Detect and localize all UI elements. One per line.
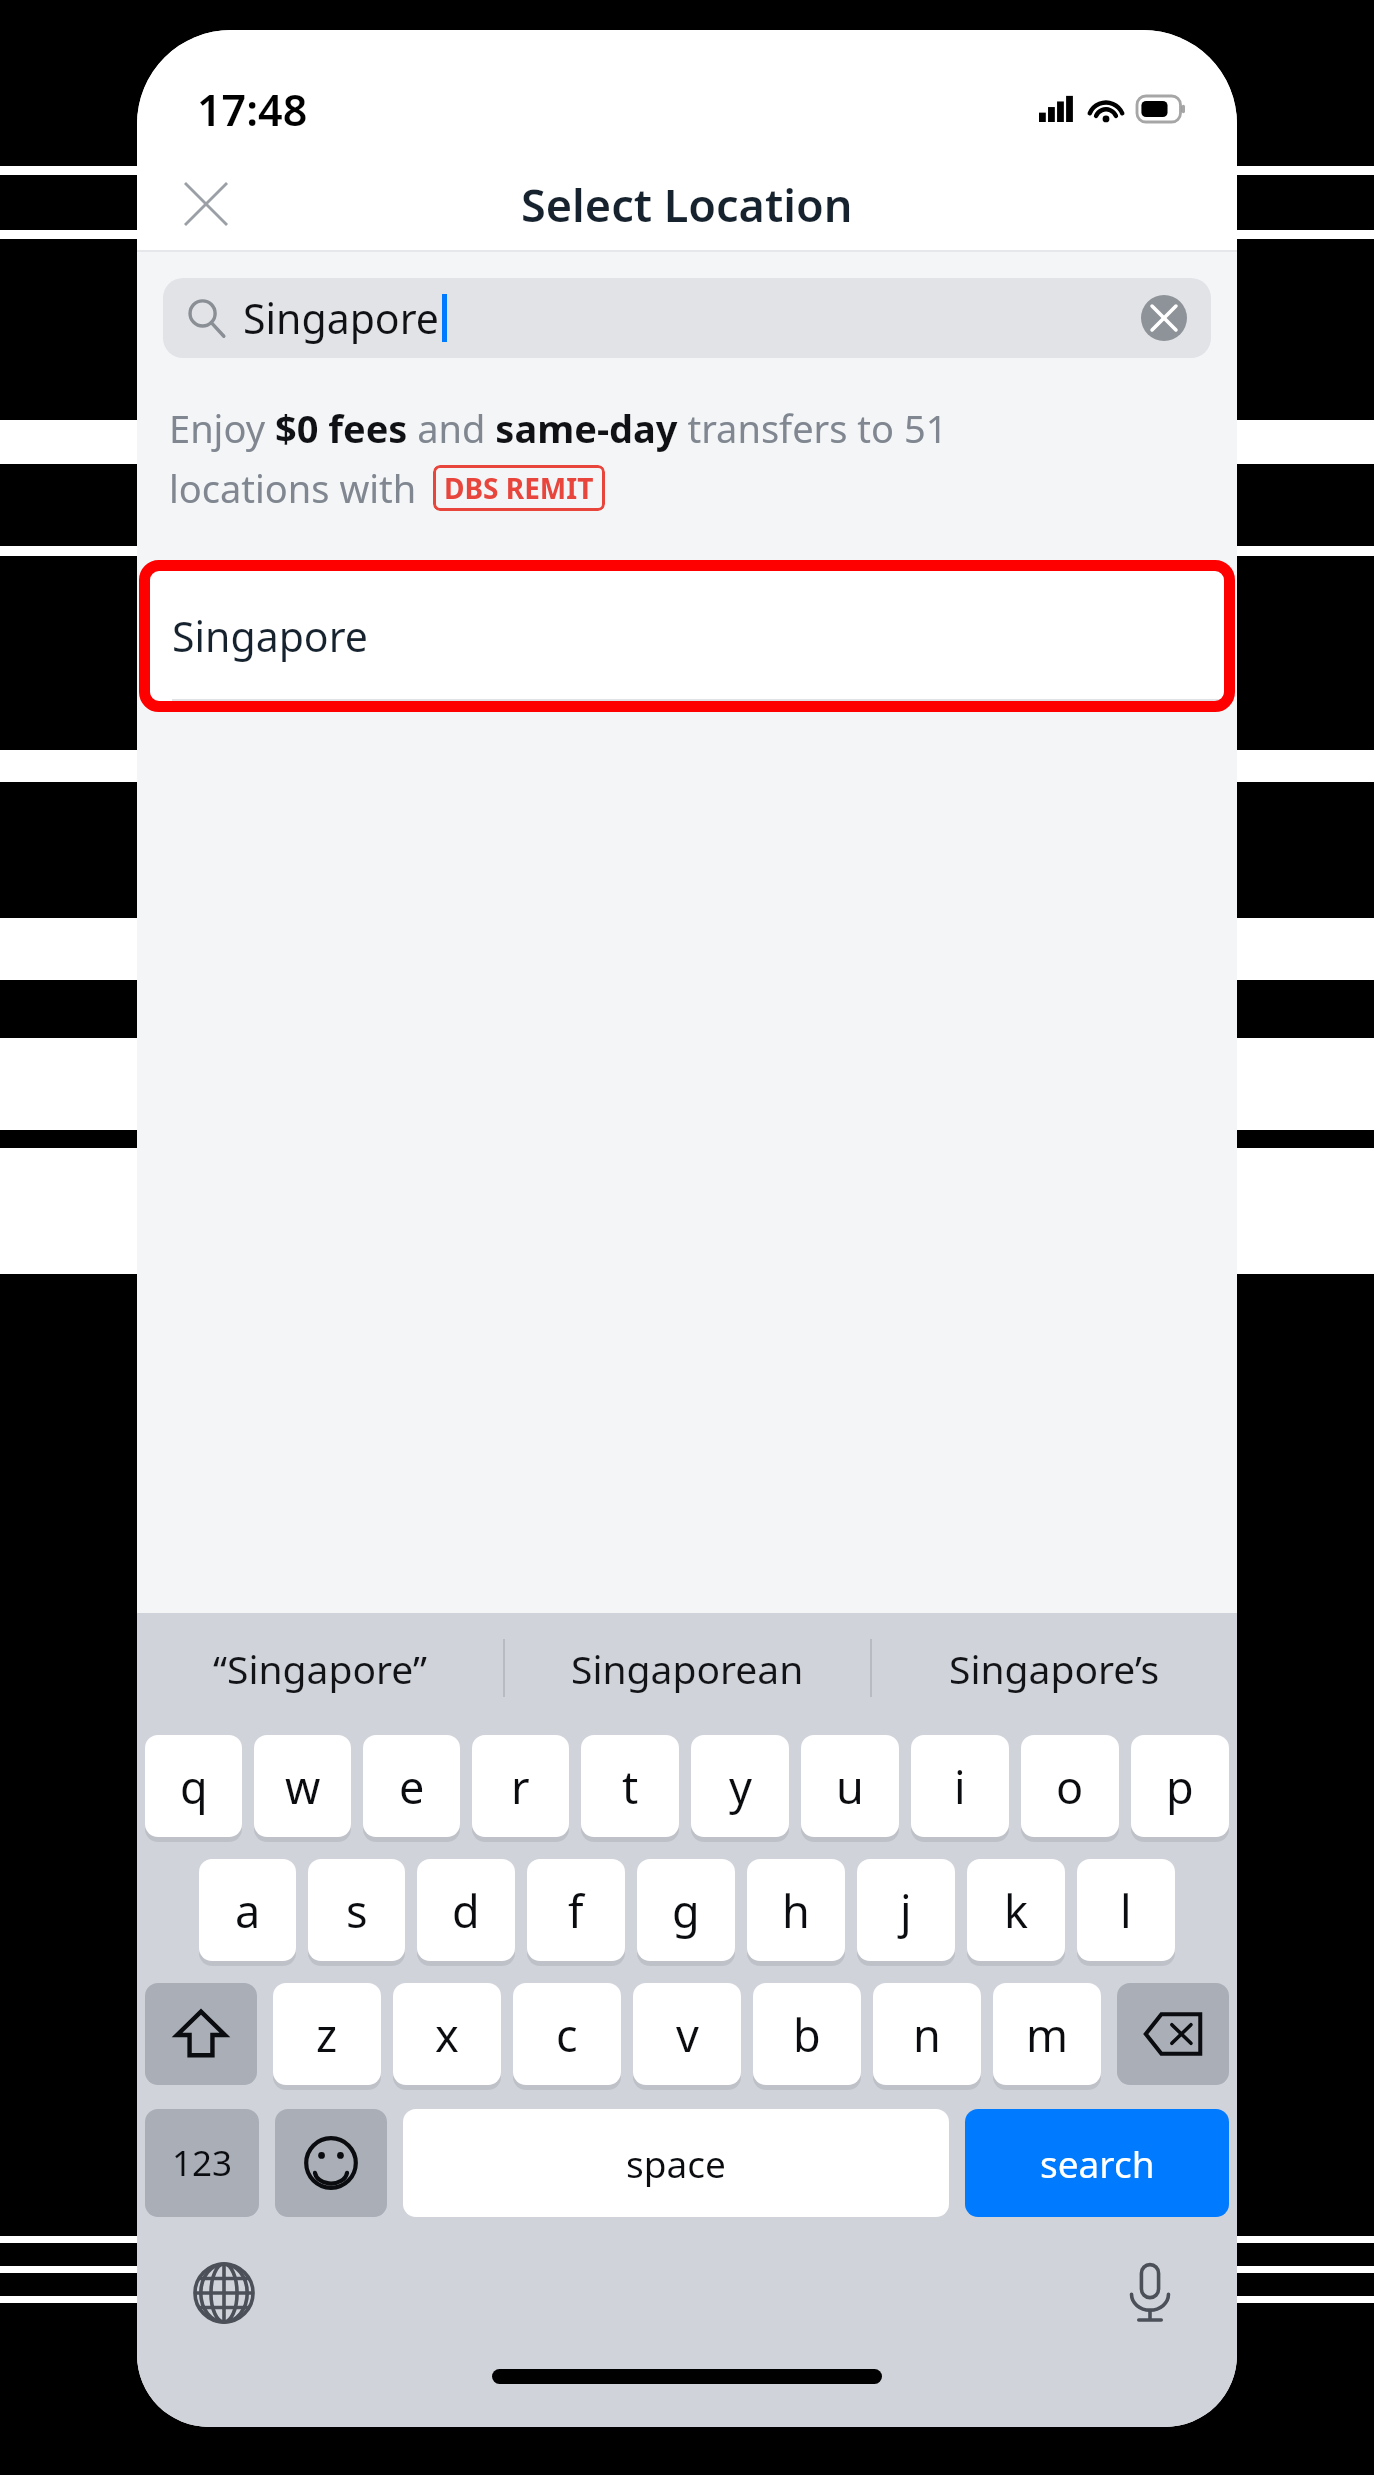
staticText: DBS REMIT bbox=[444, 469, 594, 507]
button[interactable]: j bbox=[857, 1859, 955, 1961]
staticText: t bbox=[622, 1756, 639, 1817]
button[interactable]: Clear text bbox=[1141, 295, 1187, 341]
button[interactable]: “Singapore” bbox=[137, 1613, 503, 1723]
button[interactable]: e bbox=[363, 1735, 460, 1837]
staticText: p bbox=[1166, 1756, 1194, 1817]
staticText: v bbox=[676, 2004, 699, 2065]
staticText: locations with bbox=[169, 462, 417, 514]
button[interactable]: p bbox=[1131, 1735, 1229, 1837]
staticText: s bbox=[346, 1880, 368, 1941]
button[interactable]: Close bbox=[163, 161, 249, 247]
staticText: Singapore bbox=[243, 290, 439, 346]
button[interactable]: b bbox=[753, 1983, 861, 2085]
button[interactable]: n bbox=[873, 1983, 981, 2085]
button[interactable]: y bbox=[691, 1735, 789, 1837]
button[interactable]: r bbox=[472, 1735, 569, 1837]
staticText: f bbox=[568, 1880, 584, 1941]
staticText: w bbox=[285, 1756, 321, 1817]
button[interactable]: Voice input bbox=[1109, 2252, 1191, 2334]
staticText: l bbox=[1120, 1880, 1132, 1941]
button[interactable]: m bbox=[993, 1983, 1101, 2085]
staticText: 123 bbox=[172, 2139, 233, 2187]
staticText: 17:48 bbox=[197, 80, 308, 139]
button[interactable]: z bbox=[273, 1983, 381, 2085]
staticText: r bbox=[511, 1756, 530, 1817]
staticText: o bbox=[1056, 1756, 1084, 1817]
button[interactable]: Singapore’s bbox=[872, 1613, 1237, 1723]
staticText: Select Location bbox=[521, 174, 853, 235]
button[interactable]: search bbox=[965, 2109, 1229, 2217]
staticText: u bbox=[836, 1756, 864, 1817]
staticText: Singaporean bbox=[571, 1642, 804, 1695]
button[interactable]: x bbox=[393, 1983, 501, 2085]
staticText: “Singapore” bbox=[213, 1642, 427, 1695]
staticText: Enjoy $0 fees and same-day transfers to … bbox=[169, 402, 948, 454]
button[interactable]: l bbox=[1077, 1859, 1175, 1961]
staticText: e bbox=[399, 1756, 425, 1817]
button[interactable]: Singaporean bbox=[505, 1613, 870, 1723]
button[interactable]: t bbox=[581, 1735, 679, 1837]
button[interactable]: h bbox=[747, 1859, 845, 1961]
button[interactable]: Singapore bbox=[163, 278, 1211, 358]
button[interactable]: o bbox=[1021, 1735, 1119, 1837]
staticText: k bbox=[1004, 1880, 1029, 1941]
button[interactable]: Singapore bbox=[150, 571, 1224, 701]
button[interactable]: c bbox=[513, 1983, 621, 2085]
staticText: m bbox=[1026, 2004, 1069, 2065]
button[interactable]: i bbox=[911, 1735, 1009, 1837]
button[interactable]: 123 bbox=[145, 2109, 259, 2217]
button[interactable]: q bbox=[145, 1735, 242, 1837]
staticText: j bbox=[900, 1880, 912, 1941]
staticText: a bbox=[235, 1880, 261, 1941]
staticText: x bbox=[435, 2004, 459, 2065]
staticText: d bbox=[452, 1880, 480, 1941]
button[interactable]: s bbox=[308, 1859, 405, 1961]
staticText: Singapore bbox=[172, 608, 368, 664]
staticText: space bbox=[626, 2138, 726, 2188]
button[interactable]: u bbox=[801, 1735, 899, 1837]
button[interactable]: Change keyboard bbox=[183, 2252, 265, 2334]
staticText: z bbox=[316, 2004, 338, 2065]
button[interactable]: g bbox=[637, 1859, 735, 1961]
staticText: n bbox=[913, 2004, 941, 2065]
staticText: Singapore’s bbox=[949, 1642, 1160, 1695]
staticText: h bbox=[782, 1880, 810, 1941]
button[interactable]: f bbox=[527, 1859, 625, 1961]
button[interactable]: Shift bbox=[145, 1983, 257, 2085]
button[interactable]: Backspace bbox=[1117, 1983, 1229, 2085]
staticText: i bbox=[954, 1756, 966, 1817]
staticText: search bbox=[1040, 2138, 1155, 2188]
button[interactable]: space bbox=[403, 2109, 949, 2217]
button[interactable]: d bbox=[417, 1859, 515, 1961]
button[interactable]: a bbox=[199, 1859, 296, 1961]
staticText: c bbox=[556, 2004, 578, 2065]
button[interactable]: k bbox=[967, 1859, 1065, 1961]
staticText: b bbox=[793, 2004, 821, 2065]
staticText: y bbox=[729, 1756, 752, 1817]
staticText: g bbox=[672, 1880, 700, 1941]
button[interactable]: Emoji bbox=[275, 2109, 387, 2217]
staticText: q bbox=[180, 1756, 208, 1817]
button[interactable]: w bbox=[254, 1735, 351, 1837]
button[interactable]: v bbox=[633, 1983, 741, 2085]
